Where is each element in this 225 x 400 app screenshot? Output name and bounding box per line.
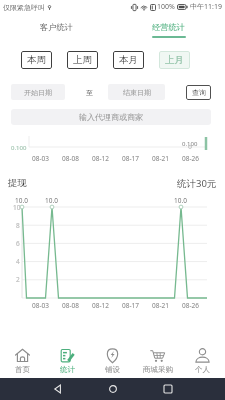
staticText: 统计: [60, 365, 75, 374]
staticText: 本月: [119, 54, 138, 66]
button[interactable]: Recents: [157, 378, 179, 400]
staticText: 6: [16, 239, 20, 248]
button[interactable]: Home: [102, 378, 124, 400]
staticText: 10: [13, 203, 21, 212]
staticText: 结束日期: [123, 88, 151, 97]
staticText: 首页: [15, 365, 30, 374]
button[interactable]: 开始日期: [11, 84, 65, 100]
button[interactable]: 查询: [186, 85, 211, 100]
staticText: 10.0: [45, 196, 58, 205]
staticText: 个人: [195, 365, 210, 374]
staticText: 上周: [73, 54, 92, 66]
staticText: 08-12: [92, 154, 109, 163]
staticText: 输入代理商或商家: [79, 112, 143, 122]
staticText: 经营统计: [152, 22, 185, 32]
staticText: 08-12: [92, 301, 109, 310]
staticText: 铺设: [105, 365, 120, 374]
staticText: 10.0: [174, 196, 187, 205]
staticText: 08-03: [32, 154, 49, 163]
staticText: 100%: [157, 2, 175, 12]
button[interactable]: 上月: [159, 51, 190, 69]
button[interactable]: 铺设: [90, 344, 135, 378]
staticText: 开始日期: [24, 88, 52, 97]
staticText: 08-03: [32, 301, 49, 310]
button[interactable]: 上周: [67, 51, 98, 69]
staticText: 4: [16, 257, 20, 266]
staticText: 商城采购: [143, 365, 173, 374]
button[interactable]: 本月: [113, 51, 144, 69]
button[interactable]: 客户统计: [0, 14, 112, 38]
staticText: 08-21: [152, 301, 169, 310]
staticText: 提现: [8, 177, 27, 189]
staticText: 上月: [165, 54, 184, 66]
button[interactable]: 商城采购: [135, 344, 180, 378]
staticText: 08-17: [122, 154, 139, 163]
staticText: 08-21: [152, 154, 169, 163]
staticText: 10.0: [15, 196, 28, 205]
button[interactable]: Back: [47, 378, 69, 400]
staticText: 8: [16, 221, 20, 230]
button[interactable]: 个人: [180, 344, 225, 378]
staticText: 08-17: [122, 301, 139, 310]
button[interactable]: 经营统计: [112, 14, 225, 38]
staticText: 统计30元: [177, 177, 217, 190]
staticText: 0.100: [182, 140, 198, 148]
button[interactable]: 本周: [21, 51, 52, 69]
button[interactable]: 首页: [0, 344, 45, 378]
staticText: 2: [16, 275, 20, 284]
staticText: 客户统计: [40, 22, 73, 32]
staticText: 中午11:19: [190, 2, 222, 12]
staticText: 08-26: [182, 154, 199, 163]
staticText: 08-26: [182, 301, 199, 310]
staticText: 08-08: [62, 154, 79, 163]
staticText: 本周: [27, 54, 46, 66]
button[interactable]: 结束日期: [108, 84, 165, 100]
staticText: 仅限紧急呼叫: [3, 3, 45, 12]
staticText: 08-08: [62, 301, 79, 310]
staticText: 至: [86, 88, 93, 97]
staticText: 查询: [192, 88, 206, 97]
staticText: 0.100: [11, 144, 27, 152]
button[interactable]: 统计: [45, 344, 90, 378]
button[interactable]: 输入代理商或商家: [11, 109, 211, 125]
